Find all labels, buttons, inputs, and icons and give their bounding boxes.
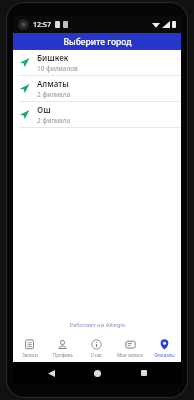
staticText: 12:57 xyxy=(33,20,51,30)
staticText: Мои записи xyxy=(117,352,143,358)
button[interactable]: Back xyxy=(42,364,60,382)
staticText: Филиалы xyxy=(154,352,175,358)
staticText: Выберите город xyxy=(63,36,132,48)
button[interactable]: Мои записи xyxy=(113,335,147,362)
staticText: Бишкек xyxy=(37,52,69,63)
button[interactable]: Бишкек xyxy=(13,50,181,75)
button[interactable]: Ош xyxy=(13,102,181,127)
button[interactable]: О нас xyxy=(79,335,113,362)
staticText: Алматы xyxy=(37,78,69,89)
staticText: 10 филиалов xyxy=(37,64,78,73)
staticText: 2 филиала xyxy=(37,90,71,99)
button[interactable]: Профиль xyxy=(46,335,79,362)
staticText: Работает на Altegio xyxy=(69,321,126,329)
button[interactable]: Записи xyxy=(13,335,46,362)
staticText: 2 филиала xyxy=(37,116,71,125)
staticText: Профиль xyxy=(53,352,73,358)
button[interactable]: Home xyxy=(88,364,106,382)
button[interactable]: Recent apps xyxy=(135,364,153,382)
staticText: Записи xyxy=(22,352,38,358)
button[interactable]: Филиалы xyxy=(147,335,181,362)
button[interactable]: Алматы xyxy=(13,76,181,101)
staticText: О нас xyxy=(90,352,103,358)
staticText: Ош xyxy=(37,104,51,115)
